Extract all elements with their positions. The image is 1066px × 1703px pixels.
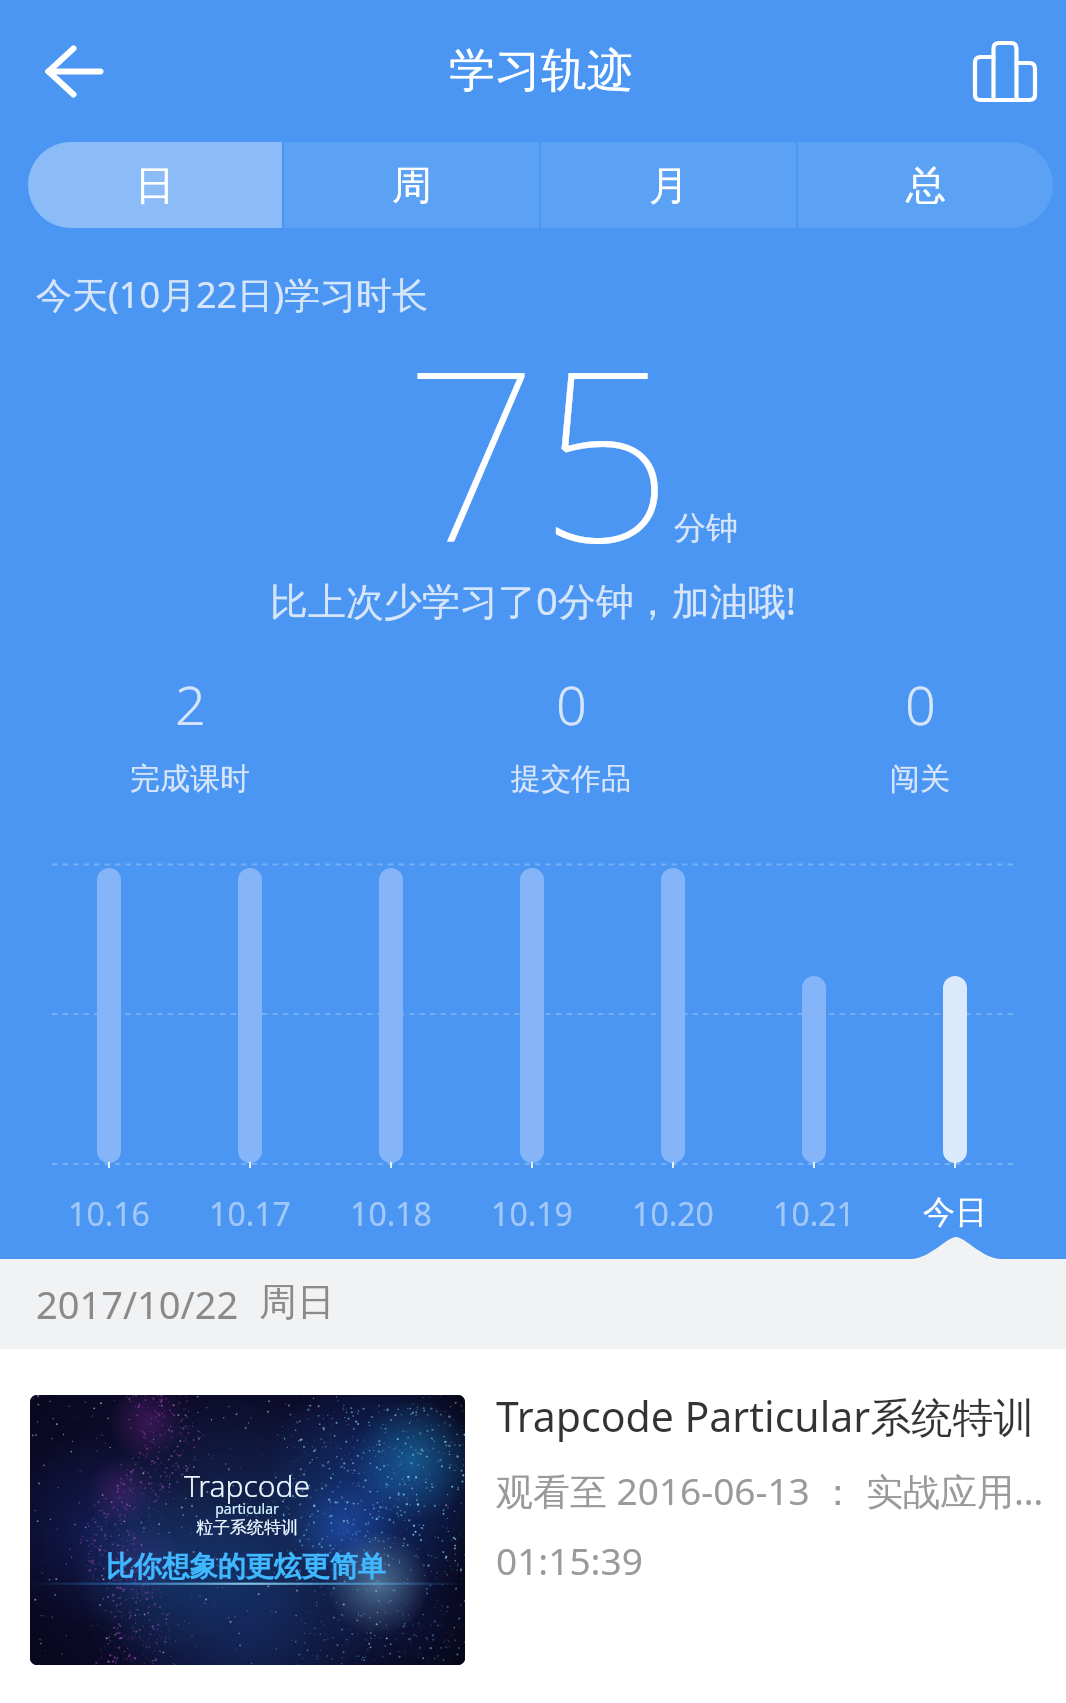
staticText: 比上次少学习了0分钟，加油哦!: [0, 574, 1066, 626]
button[interactable]: Back: [32, 29, 117, 114]
button[interactable]: Statistics: [962, 29, 1046, 113]
button[interactable]: 2: [60, 667, 320, 798]
button[interactable]: 日: [28, 142, 282, 228]
button[interactable]: 月: [541, 142, 796, 228]
staticText: 75: [404, 290, 674, 611]
button[interactable]: Trapcode: [0, 1349, 1066, 1703]
staticText: 日: [135, 160, 175, 210]
staticText: 完成课时: [130, 760, 250, 798]
button[interactable]: 周: [284, 142, 539, 228]
button[interactable]: 10.18: [321, 860, 461, 1232]
staticText: 10.16: [39, 1192, 179, 1236]
staticText: 10.21: [744, 1192, 884, 1236]
button[interactable]: 10.17: [180, 860, 320, 1232]
staticText: 提交作品: [511, 760, 631, 798]
button[interactable]: 总: [798, 142, 1053, 228]
staticText: particular: [157, 1499, 337, 1518]
staticText: 10.20: [603, 1192, 743, 1236]
staticText: 0: [556, 667, 587, 741]
button[interactable]: 10.20: [603, 860, 743, 1232]
staticText: 10.17: [180, 1192, 320, 1236]
staticText: 10.19: [462, 1192, 602, 1236]
button[interactable]: 10.16: [39, 860, 179, 1232]
staticText: 今天(10月22日)学习时长: [36, 270, 428, 319]
staticText: 比你想象的更炫更简单: [98, 1549, 393, 1584]
staticText: 2017/10/22: [36, 1278, 239, 1330]
staticText: 观看至 2016-06-13 ： 实战应用…: [496, 1465, 1052, 1516]
staticText: 学习轨迹: [449, 42, 633, 100]
button[interactable]: 0: [441, 667, 701, 798]
staticText: 周: [392, 160, 432, 210]
staticText: 总: [906, 160, 946, 210]
staticText: 月: [649, 160, 689, 210]
staticText: Trapcode Particular系统特训: [496, 1388, 1052, 1444]
staticText: 周日: [259, 1278, 335, 1326]
staticText: 闯关: [890, 760, 950, 798]
button[interactable]: 今日: [885, 860, 1025, 1232]
staticText: 10.18: [321, 1192, 461, 1236]
staticText: 分钟: [674, 508, 738, 548]
staticText: 今日: [885, 1192, 1025, 1232]
staticText: 0: [905, 667, 936, 741]
button[interactable]: 0: [790, 667, 1050, 798]
staticText: 2: [175, 667, 206, 741]
staticText: Trapcode: [157, 1465, 337, 1506]
button[interactable]: 10.19: [462, 860, 602, 1232]
button[interactable]: 10.21: [744, 860, 884, 1232]
staticText: 粒子系统特训: [157, 1517, 337, 1538]
staticText: 01:15:39: [496, 1535, 643, 1585]
